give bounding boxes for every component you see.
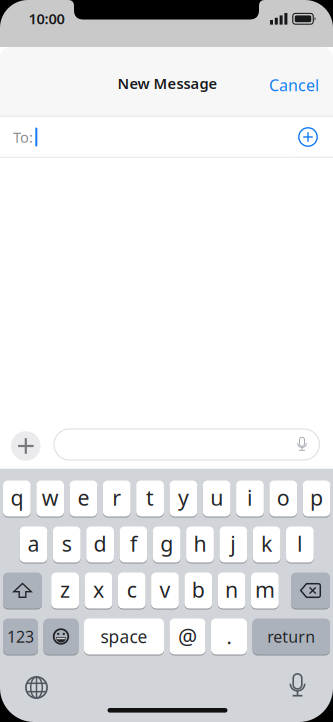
button[interactable]: Cancel [266, 70, 322, 100]
staticText: return [267, 626, 315, 647]
button[interactable]: b [184, 572, 212, 609]
staticText: w [42, 483, 59, 512]
button[interactable]: i [236, 480, 264, 517]
staticText: e [77, 483, 89, 512]
button[interactable]: o [269, 480, 297, 517]
button[interactable]: return [252, 618, 330, 655]
button[interactable]: h [186, 526, 214, 563]
staticText: f [130, 529, 137, 558]
button[interactable]: y [169, 480, 197, 517]
staticText: Cancel [269, 74, 319, 96]
staticText: @ [178, 622, 197, 651]
staticText: k [261, 529, 272, 558]
button[interactable] [291, 572, 330, 609]
button[interactable]: v [151, 572, 179, 609]
button[interactable]: r [103, 480, 131, 517]
staticText: p [310, 483, 323, 512]
staticText: s [62, 529, 72, 558]
button[interactable] [54, 429, 319, 460]
button[interactable]: 123 [3, 618, 38, 655]
button[interactable]: t [136, 480, 164, 517]
button[interactable] [16, 667, 56, 707]
staticText: r [112, 483, 121, 512]
button[interactable]: c [118, 572, 146, 609]
button[interactable]: k [253, 526, 280, 563]
button[interactable]: j [219, 526, 247, 563]
staticText: v [159, 575, 170, 604]
button[interactable] [3, 572, 42, 609]
button[interactable]: f [119, 526, 147, 563]
button[interactable]: g [153, 526, 181, 563]
staticText: m [255, 575, 275, 604]
button[interactable]: d [86, 526, 114, 563]
button[interactable]: x [84, 572, 112, 609]
button[interactable]: m [251, 572, 279, 609]
staticText: c [127, 575, 137, 604]
staticText: t [146, 483, 154, 512]
button[interactable] [298, 127, 318, 147]
staticText: n [225, 575, 238, 604]
staticText: space [100, 625, 147, 648]
staticText: z [60, 575, 70, 604]
staticText: To: [13, 127, 33, 147]
staticText: q [10, 483, 23, 512]
button[interactable] [277, 666, 317, 706]
staticText: b [192, 575, 205, 604]
button[interactable] [11, 431, 41, 461]
staticText: x [93, 575, 104, 604]
staticText: u [210, 483, 223, 512]
staticText: h [193, 529, 206, 558]
staticText: . [226, 623, 231, 650]
button[interactable]: q [3, 480, 31, 517]
staticText: d [94, 529, 107, 558]
button[interactable]: a [20, 526, 47, 563]
button[interactable]: z [51, 572, 79, 609]
staticText: o [277, 483, 290, 512]
staticText: 123 [7, 626, 34, 647]
button[interactable]: u [203, 480, 231, 517]
button[interactable] [43, 618, 78, 655]
button[interactable]: e [70, 480, 97, 517]
staticText: 10:00 [28, 9, 64, 28]
button[interactable]: . [211, 618, 247, 655]
button[interactable]: space [84, 618, 164, 655]
button[interactable]: l [286, 526, 314, 563]
button[interactable]: w [36, 480, 64, 517]
button[interactable]: To: [0, 117, 293, 156]
staticText: New Message [117, 74, 217, 93]
button[interactable]: @ [169, 618, 205, 655]
staticText: y [178, 483, 189, 512]
button[interactable]: p [303, 480, 330, 517]
staticText: g [160, 529, 173, 558]
staticText: l [297, 529, 303, 558]
staticText: i [247, 483, 253, 512]
button[interactable]: s [53, 526, 81, 563]
staticText: j [230, 529, 236, 558]
staticText: a [27, 529, 39, 558]
button[interactable]: n [218, 572, 245, 609]
